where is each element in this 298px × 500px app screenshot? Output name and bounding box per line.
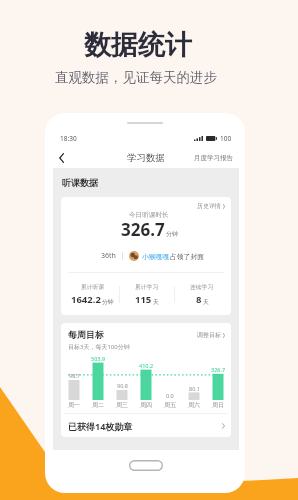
staticText: 今日听课时长 [129, 211, 169, 219]
staticText: 周日 [212, 401, 224, 409]
staticText: 周一 [68, 401, 80, 409]
staticText: 115 [135, 293, 152, 306]
staticText: 周五 [164, 401, 176, 409]
staticText: 周二 [92, 401, 104, 409]
staticText: 周三 [116, 401, 128, 409]
staticText: 直观数据，见证每天的进步 [55, 69, 217, 86]
staticText: 8 [196, 293, 202, 306]
staticText: 36th [101, 251, 116, 261]
staticText: 天 [153, 298, 159, 305]
staticText: 调整目标 [197, 331, 221, 339]
staticText: 326.7 [211, 366, 226, 373]
staticText: 18:30 [60, 134, 77, 143]
staticText: 周六 [188, 401, 200, 409]
staticText: 98.7 [69, 372, 80, 379]
staticText: 目标3天，每天100分钟 [68, 343, 130, 351]
staticText: 听课数据 [62, 177, 98, 188]
button[interactable]: 已获得14枚勋章 [61, 414, 231, 437]
staticText: 占领了封面 [170, 252, 204, 261]
staticText: 分钟 [102, 298, 114, 305]
staticText: 累计听课 [81, 283, 105, 290]
staticText: 90.8 [117, 382, 128, 389]
staticText: 已获得14枚勋章 [68, 420, 133, 432]
staticText: 326.7 [121, 218, 165, 241]
staticText: 分钟 [166, 230, 178, 238]
staticText: 天 [203, 298, 209, 305]
staticText: 410.2 [139, 362, 154, 369]
staticText: 0.0 [166, 392, 174, 399]
button[interactable]: 月度学习报告 [188, 154, 239, 162]
staticText: 小猴嘎嘎 [142, 252, 170, 261]
button[interactable]: Back [53, 150, 69, 166]
staticText: 503.9 [91, 355, 106, 362]
button[interactable]: 历史详情 [197, 197, 231, 210]
staticText: 学习数据 [127, 152, 165, 164]
staticText: 100 [220, 134, 232, 143]
staticText: 月度学习报告 [194, 154, 233, 162]
button[interactable]: 调整目标 [197, 331, 225, 339]
staticText: 数据统计 [84, 28, 192, 62]
staticText: 累计学习 [135, 283, 159, 290]
staticText: 历史详情 [197, 202, 221, 210]
staticText: 1642.2 [71, 293, 101, 306]
staticText: 80.1 [189, 385, 200, 392]
staticText: 每周目标 [68, 329, 104, 340]
staticText: 连续学习 [190, 283, 214, 290]
staticText: 周四 [140, 401, 152, 409]
